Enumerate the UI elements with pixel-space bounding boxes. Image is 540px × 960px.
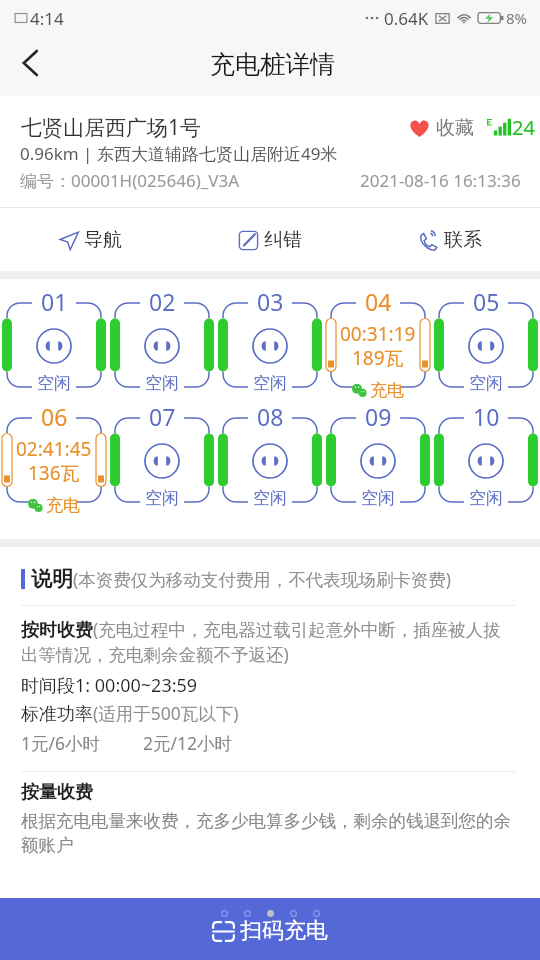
staticText: 189瓦 [352, 345, 404, 371]
staticText: 编号：00001H(025646)_V3A [20, 169, 240, 192]
button[interactable]: 05 [432, 279, 540, 394]
staticText: 导航 [84, 228, 122, 252]
staticText: 充电 [370, 380, 404, 401]
staticText: 4:14 [30, 7, 64, 30]
button[interactable]: 收藏 [408, 116, 474, 140]
staticText: 空闲 [469, 488, 503, 509]
staticText: 03 [257, 286, 284, 317]
staticText: 07 [149, 401, 176, 432]
staticText: 充电 [46, 495, 80, 516]
staticText: 2021-08-16 16:13:36 [360, 169, 521, 192]
staticText: 08 [257, 401, 284, 432]
button[interactable]: 04 [324, 279, 432, 394]
staticText: 空闲 [469, 373, 503, 394]
staticText: 24 [512, 114, 535, 141]
staticText: 纠错 [264, 228, 302, 252]
staticText: 8% [506, 8, 528, 28]
staticText: 0.96km | 东西大道辅路七贤山居附近49米 [20, 142, 338, 165]
staticText: 空闲 [253, 488, 287, 509]
staticText: 根据充电电量来收费，充多少电算多少钱，剩余的钱退到您的余额账户 [21, 810, 517, 856]
button[interactable]: 导航 [0, 208, 180, 271]
staticText: 充电桩详情 [210, 49, 335, 80]
staticText: 时间段1: 00:00~23:59 [21, 673, 198, 698]
staticText: 09 [365, 401, 392, 432]
staticText: 标准功率(适用于500瓦以下) [21, 701, 239, 725]
staticText: 收藏 [436, 116, 474, 140]
staticText: 扫码充电 [240, 917, 328, 945]
staticText: 02 [149, 286, 176, 317]
staticText: 1元/6小时 [21, 731, 101, 755]
staticText: 按量收费 [21, 781, 93, 804]
button[interactable]: 联系 [360, 208, 540, 271]
staticText: 空闲 [145, 373, 179, 394]
staticText: 00:31:19 [340, 321, 416, 347]
staticText: 06 [41, 401, 68, 432]
button[interactable]: 纠错 [180, 208, 360, 271]
button[interactable]: 01 [0, 279, 108, 394]
staticText: 02:41:45 [16, 436, 92, 462]
button[interactable]: 08 [216, 394, 324, 509]
staticText: 空闲 [253, 373, 287, 394]
button[interactable]: 06 [0, 394, 108, 509]
staticText: 04 [365, 286, 392, 317]
staticText: 10 [473, 401, 500, 432]
staticText: 空闲 [37, 373, 71, 394]
staticText: 2元/12小时 [143, 731, 233, 755]
staticText: 按时收费(充电过程中，充电器过载引起意外中断，插座被人拔出等情况，充电剩余金额不… [21, 617, 517, 666]
staticText: 说明(本资费仅为移动支付费用，不代表现场刷卡资费) [31, 566, 451, 592]
staticText: 七贤山居西广场1号 [21, 113, 202, 142]
staticText: 空闲 [145, 488, 179, 509]
button[interactable]: 07 [108, 394, 216, 509]
staticText: 0.64K [384, 7, 429, 30]
button[interactable]: 扫码充电 [0, 898, 540, 960]
button[interactable]: 10 [432, 394, 540, 509]
button[interactable]: 09 [324, 394, 432, 509]
staticText: 05 [473, 286, 500, 317]
staticText: 联系 [444, 228, 482, 252]
staticText: 01 [41, 286, 68, 317]
button[interactable]: Back [4, 40, 56, 92]
staticText: 空闲 [361, 488, 395, 509]
button[interactable]: 03 [216, 279, 324, 394]
staticText: 136瓦 [28, 460, 80, 486]
button[interactable]: 02 [108, 279, 216, 394]
